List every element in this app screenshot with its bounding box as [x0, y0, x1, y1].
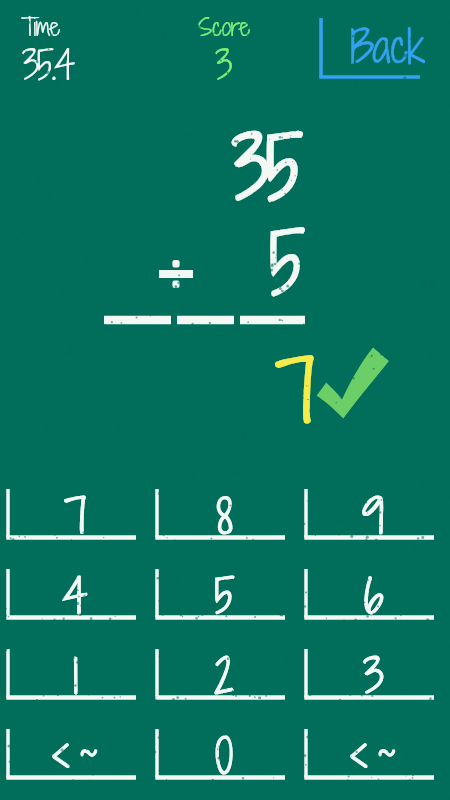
staticText: 1 [72, 644, 79, 695]
button[interactable]: 3 [304, 649, 434, 700]
staticText: 0 [215, 724, 233, 775]
staticText: 6 [363, 564, 384, 615]
staticText: Score [175, 9, 273, 44]
staticText: 0 [215, 724, 233, 775]
staticText: 5 [269, 206, 306, 322]
staticText: 4 [62, 564, 88, 615]
staticText: Score [175, 9, 273, 44]
staticText: 9 [362, 484, 384, 535]
staticText: 9 [362, 484, 384, 535]
staticText: 8 [216, 484, 233, 535]
staticText: 7 [275, 333, 316, 449]
staticText: Time [21, 10, 60, 44]
staticText: 8 [216, 484, 233, 535]
button[interactable]: 2 [155, 649, 285, 700]
staticText: 5 [214, 564, 235, 615]
staticText: 3 [175, 38, 273, 93]
staticText: 7 [64, 484, 87, 535]
staticText: <~ [348, 724, 402, 775]
staticText: 5 [214, 564, 235, 615]
staticText: 7 [275, 333, 316, 449]
staticText: <~ [348, 724, 402, 775]
button[interactable]: 6 [304, 569, 434, 620]
button[interactable]: 5 [155, 569, 285, 620]
staticText: 3 [175, 38, 273, 93]
button[interactable]: 7 [6, 489, 136, 540]
button[interactable]: 8 [155, 489, 285, 540]
staticText: 3 [363, 644, 384, 695]
staticText: 2 [214, 644, 234, 695]
staticText: <~ [50, 724, 104, 775]
staticText: 35.4 [22, 38, 73, 93]
button[interactable]: Backspace [304, 729, 434, 780]
button[interactable]: 4 [6, 569, 136, 620]
staticText: 35 [232, 108, 300, 227]
button[interactable]: 1 [6, 649, 136, 700]
button[interactable]: Backspace [6, 729, 136, 780]
button[interactable]: 0 [155, 729, 285, 780]
staticText: Back [350, 14, 425, 75]
staticText: 5 [269, 206, 306, 322]
staticText: 6 [363, 564, 384, 615]
staticText: 1 [72, 644, 79, 695]
staticText: 2 [214, 644, 234, 695]
staticText: <~ [50, 724, 104, 775]
staticText: 7 [64, 484, 87, 535]
staticText: 35 [232, 108, 300, 227]
staticText: 3 [363, 644, 384, 695]
staticText: 4 [62, 564, 88, 615]
button[interactable]: Back [319, 18, 420, 79]
button[interactable]: 9 [304, 489, 434, 540]
staticText: Back [350, 14, 425, 75]
